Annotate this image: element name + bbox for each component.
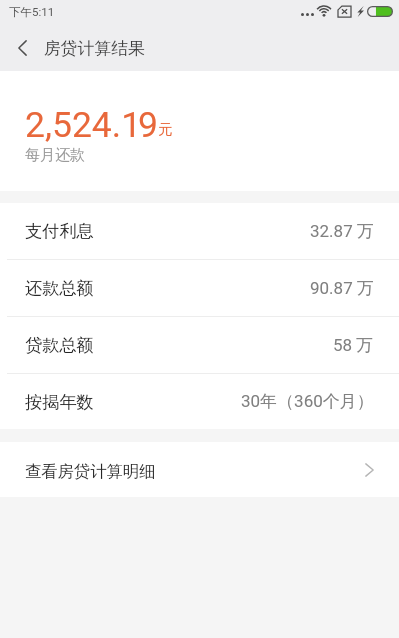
button[interactable]: 还款总额: [0, 260, 399, 316]
button[interactable]: 按揭年数: [0, 374, 399, 429]
staticText: 58 万: [333, 335, 374, 356]
staticText: 按揭年数: [25, 391, 94, 413]
button[interactable]: 支付利息: [0, 203, 399, 259]
button[interactable]: 查看房贷计算明细: [0, 442, 399, 497]
button[interactable]: 贷款总额: [0, 317, 399, 373]
staticText: 还款总额: [25, 277, 94, 299]
staticText: 查看房贷计算明细: [25, 461, 156, 482]
staticText: 支付利息: [25, 220, 94, 242]
staticText: 贷款总额: [25, 334, 94, 356]
staticText: 每月还款: [25, 146, 85, 165]
staticText: 2,524.1: [25, 104, 142, 146]
staticText: 30年（360个月）: [241, 391, 374, 412]
staticText: 房贷计算结果: [44, 38, 145, 59]
staticText: 90.87 万: [310, 278, 374, 299]
staticText: 下午5:11: [9, 5, 55, 19]
staticText: 9: [138, 104, 158, 146]
staticText: 元: [158, 120, 173, 138]
staticText: 32.87 万: [310, 221, 374, 242]
button[interactable]: Back: [0, 24, 44, 71]
